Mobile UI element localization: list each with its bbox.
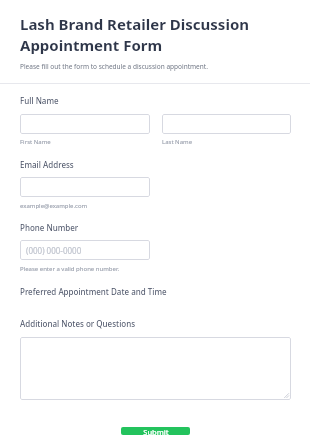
button[interactable]: Phone Number: [20, 240, 150, 260]
staticText: Lash Brand Retailer Discussion Appointme…: [20, 14, 292, 56]
staticText: Phone Number: [20, 222, 79, 233]
button[interactable]: Email Address: [20, 177, 150, 197]
staticText: Last Name: [162, 138, 193, 146]
staticText: Full Name: [20, 95, 59, 106]
button[interactable]: Additional Notes or Questions: [20, 337, 291, 400]
staticText: (000) 000-0000: [26, 245, 82, 256]
button[interactable]: Submit: [121, 427, 190, 435]
staticText: Please enter a valid phone number.: [20, 265, 120, 273]
staticText: Submit: [143, 427, 169, 435]
staticText: Preferred Appointment Date and Time: [20, 286, 167, 297]
button[interactable]: Last Name: [162, 114, 291, 134]
button[interactable]: First Name: [20, 114, 150, 134]
staticText: Please fill out the form to schedule a d…: [20, 62, 208, 71]
staticText: Email Address: [20, 159, 74, 170]
staticText: example@example.com: [20, 202, 88, 210]
staticText: Additional Notes or Questions: [20, 318, 136, 329]
staticText: First Name: [20, 138, 51, 146]
